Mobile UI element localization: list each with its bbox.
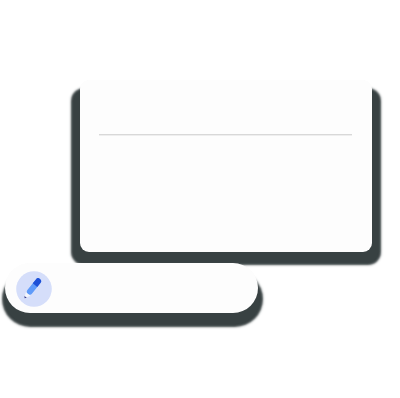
button[interactable]: Compose (5, 263, 258, 313)
button[interactable] (80, 80, 372, 252)
